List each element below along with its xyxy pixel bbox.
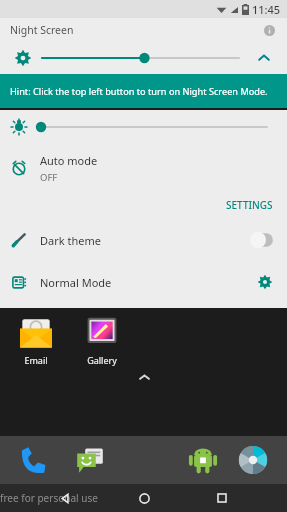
button[interactable]: Camera: [233, 440, 273, 480]
button[interactable]: Collapse: [251, 45, 277, 71]
staticText: Gallery: [87, 354, 117, 366]
staticText: Dark theme: [40, 233, 101, 248]
button[interactable]: Phone: [14, 440, 54, 480]
button[interactable]: [42, 45, 239, 71]
button[interactable]: Info: [259, 20, 279, 40]
button[interactable]: Apps: [183, 440, 223, 480]
staticText: Email: [24, 354, 48, 366]
button[interactable]: Messaging: [70, 440, 110, 480]
staticText: OFF: [40, 171, 58, 184]
staticText: SETTINGS: [226, 198, 273, 212]
button[interactable]: Normal Mode: [0, 262, 287, 302]
button[interactable]: Hint: Click the top left button to turn …: [0, 74, 287, 108]
button[interactable]: Auto mode: [0, 144, 287, 192]
staticText: 11:45: [252, 2, 281, 17]
staticText: Hint: Click the top left button to turn …: [10, 85, 268, 98]
button[interactable]: Mode settings: [251, 268, 279, 296]
button[interactable]: Recents: [209, 485, 235, 511]
button[interactable]: SETTINGS: [226, 198, 273, 212]
button[interactable]: Dark theme: [0, 218, 287, 262]
staticText: Auto mode: [40, 153, 98, 168]
button[interactable]: All apps: [133, 366, 155, 388]
staticText: Night Screen: [10, 23, 74, 37]
staticText: Normal Mode: [40, 275, 112, 290]
button[interactable]: Gallery: [76, 314, 128, 366]
button[interactable]: Home: [131, 485, 157, 511]
button[interactable]: Night screen toggle: [8, 43, 38, 73]
button[interactable]: Email: [10, 314, 62, 366]
button[interactable]: Back: [52, 485, 78, 511]
button[interactable]: [38, 114, 267, 140]
staticText: free for personal use: [0, 491, 98, 505]
